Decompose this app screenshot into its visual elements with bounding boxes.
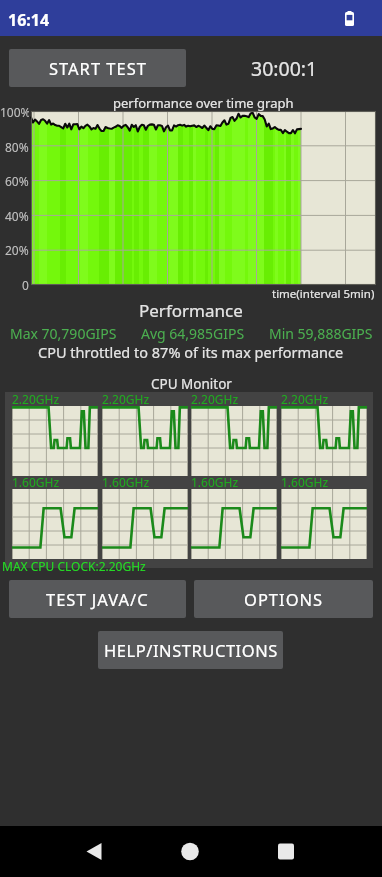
staticText: 40%: [5, 208, 29, 224]
button[interactable]: TEST JAVA/C: [9, 580, 186, 618]
staticText: time(interval 5min): [272, 286, 375, 302]
staticText: Min 59,888GIPS: [269, 324, 373, 343]
button[interactable]: Recent apps: [266, 826, 306, 877]
staticText: CPU throttled to 87% of its max performa…: [38, 342, 344, 362]
staticText: 20%: [5, 242, 29, 258]
staticText: 2.20GHz: [191, 391, 239, 407]
staticText: CPU Monitor: [151, 375, 232, 393]
staticText: Avg 64,985GIPS: [141, 324, 245, 343]
button[interactable]: Home: [170, 826, 210, 877]
staticText: 1.60GHz: [191, 474, 239, 490]
staticText: 2.20GHz: [12, 391, 60, 407]
button[interactable]: OPTIONS: [194, 580, 373, 618]
staticText: HELP/INSTRUCTIONS: [104, 639, 278, 661]
staticText: 1.60GHz: [102, 474, 150, 490]
staticText: 80%: [5, 139, 29, 155]
staticText: 1.60GHz: [12, 474, 60, 490]
staticText: 30:00:1: [251, 55, 318, 82]
staticText: performance over time graph: [113, 94, 294, 112]
staticText: OPTIONS: [244, 588, 324, 610]
staticText: Performance: [139, 299, 243, 322]
button[interactable]: Back: [74, 826, 114, 877]
staticText: Max 70,790GIPS: [10, 324, 117, 343]
staticText: 16:14: [8, 9, 50, 31]
staticText: 1.60GHz: [281, 474, 329, 490]
staticText: START TEST: [49, 57, 147, 79]
staticText: TEST JAVA/C: [46, 588, 149, 610]
button[interactable]: START TEST: [9, 49, 186, 87]
staticText: MAX CPU CLOCK:2.20GHz: [2, 558, 146, 574]
staticText: 100%: [0, 104, 29, 120]
staticText: 2.20GHz: [102, 391, 150, 407]
staticText: 0: [22, 277, 29, 293]
staticText: 2.20GHz: [281, 391, 329, 407]
staticText: 60%: [5, 173, 29, 189]
button[interactable]: HELP/INSTRUCTIONS: [98, 631, 283, 669]
